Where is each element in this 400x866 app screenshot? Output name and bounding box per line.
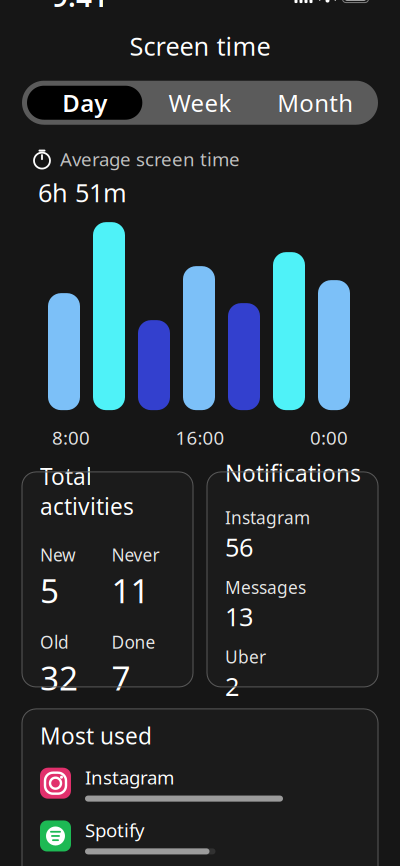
staticText: 13 <box>225 600 253 633</box>
staticText: 2 <box>225 669 239 703</box>
button[interactable]: Spotify <box>40 818 360 854</box>
staticText: 32 <box>40 656 78 700</box>
button[interactable]: Month <box>258 86 373 120</box>
staticText: Day <box>62 87 107 119</box>
staticText: Week <box>168 87 231 119</box>
staticText: 0:00 <box>310 425 348 450</box>
staticText: 56 <box>225 530 253 564</box>
staticText: 7 <box>111 656 130 700</box>
staticText: 16:00 <box>175 425 224 450</box>
staticText: 6h 51m <box>38 175 127 209</box>
button[interactable]: Week <box>142 86 258 120</box>
staticText: Old <box>40 630 69 653</box>
staticText: Average screen time <box>60 147 240 171</box>
staticText: Total activities <box>40 461 134 521</box>
staticText: Instagram <box>85 765 174 790</box>
staticText: Month <box>277 87 353 119</box>
staticText: 8:00 <box>52 425 90 450</box>
staticText: Done <box>111 630 155 653</box>
staticText: Notifications <box>225 458 361 488</box>
staticText: Screen time <box>129 29 270 63</box>
staticText: Uber <box>225 645 266 668</box>
staticText: Messages <box>225 576 306 599</box>
staticText: Instagram <box>225 506 310 529</box>
button[interactable]: Instagram <box>40 765 400 802</box>
staticText: Never <box>111 543 159 566</box>
staticText: Most used <box>40 721 152 751</box>
staticText: 11 <box>111 568 149 613</box>
button[interactable]: Day <box>27 86 142 120</box>
staticText: New <box>40 543 76 566</box>
staticText: 5 <box>40 568 59 613</box>
staticText: Spotify <box>85 818 145 842</box>
staticText: 9:41 <box>52 0 108 15</box>
